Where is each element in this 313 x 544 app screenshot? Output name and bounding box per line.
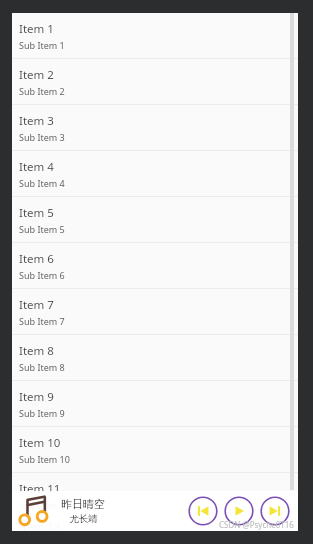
staticText: Sub Item 7 — [19, 315, 65, 327]
button[interactable]: Item 9 — [12, 381, 298, 427]
staticText: Item 5 — [19, 205, 54, 221]
staticText: CSDN @Psyche0T16 — [219, 519, 294, 530]
staticText: 昨日晴空 — [61, 497, 105, 511]
staticText: Item 7 — [19, 297, 54, 313]
staticText: Item 6 — [19, 251, 54, 267]
button[interactable]: Item 11 — [12, 473, 298, 519]
staticText: Item 10 — [19, 435, 61, 451]
staticText: Item 11 — [19, 481, 61, 497]
button[interactable]: Item 12 — [12, 519, 298, 531]
staticText: Sub Item 5 — [19, 223, 65, 235]
button[interactable]: Item 2 — [12, 59, 298, 105]
staticText: Sub Item 10 — [19, 453, 70, 465]
staticText: Sub Item 4 — [19, 177, 65, 189]
button[interactable]: Item 5 — [12, 197, 298, 243]
button[interactable]: Item 4 — [12, 151, 298, 197]
staticText: Item 4 — [19, 159, 54, 175]
button[interactable]: Next — [258, 494, 292, 528]
staticText: Item 8 — [19, 343, 54, 359]
staticText: Item 3 — [19, 113, 54, 129]
staticText: Sub Item 11 — [19, 499, 70, 511]
staticText: Item 12 — [19, 519, 61, 530]
button[interactable]: Play — [222, 494, 256, 528]
staticText: Item 2 — [19, 67, 54, 83]
button[interactable]: Item 10 — [12, 427, 298, 473]
staticText: Sub Item 6 — [19, 269, 65, 281]
staticText: 尤长靖 — [69, 513, 98, 525]
button[interactable]: Item 8 — [12, 335, 298, 381]
button[interactable]: Previous — [186, 494, 220, 528]
button[interactable]: Item 6 — [12, 243, 298, 289]
staticText: Item 9 — [19, 389, 54, 405]
button[interactable]: Item 7 — [12, 289, 298, 335]
staticText: Sub Item 2 — [19, 85, 65, 97]
button[interactable]: Item 1 — [12, 13, 298, 59]
button[interactable]: Item 3 — [12, 105, 298, 151]
staticText: Sub Item 9 — [19, 407, 65, 419]
staticText: Sub Item 3 — [19, 131, 65, 143]
staticText: Item 1 — [19, 21, 54, 37]
staticText: Sub Item 8 — [19, 361, 65, 373]
staticText: Sub Item 1 — [19, 39, 65, 51]
